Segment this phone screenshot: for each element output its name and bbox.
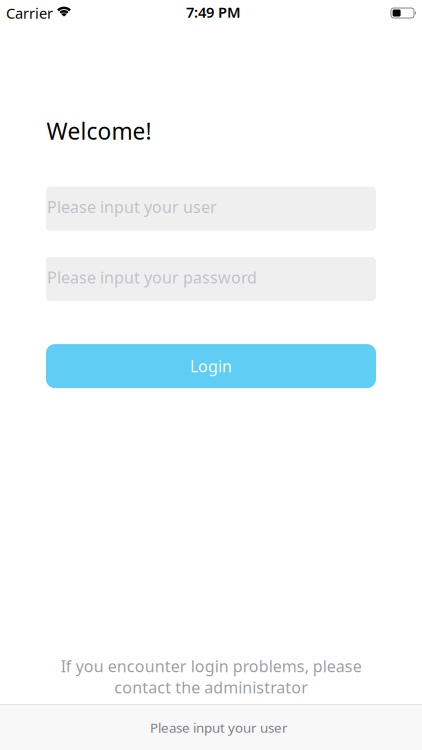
staticText: 7:49 PM (186, 2, 241, 22)
staticText: Please input your password (47, 267, 257, 288)
staticText: If you encounter login problems, please … (60, 655, 361, 698)
staticText: Please input your user (150, 719, 288, 736)
staticText: Please input your user (47, 196, 217, 217)
staticText: Carrier (6, 3, 53, 23)
button[interactable]: Login (46, 344, 376, 388)
button[interactable]: Please input your user (46, 187, 376, 231)
staticText: Welcome! (46, 116, 151, 146)
button[interactable]: Please input your password (46, 257, 376, 301)
staticText: Login (190, 355, 232, 377)
